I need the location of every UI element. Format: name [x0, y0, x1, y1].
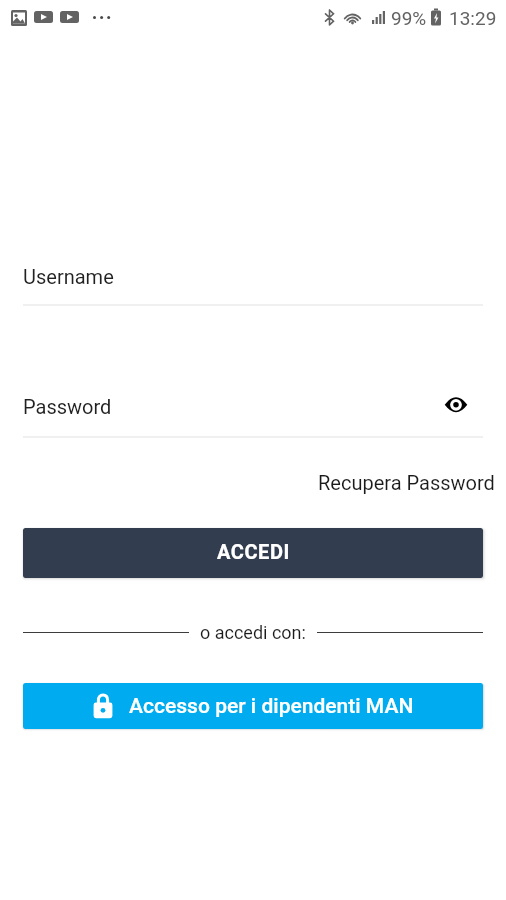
button[interactable]: Accesso per i dipendenti MAN	[23, 683, 483, 729]
staticText: Password	[23, 395, 112, 418]
staticText: Username	[23, 265, 114, 288]
button[interactable]: Username	[23, 262, 483, 290]
staticText: Recupera Password	[318, 471, 495, 494]
button[interactable]: ACCEDI	[23, 528, 483, 578]
staticText: 13:29	[449, 7, 497, 29]
staticText: Accesso per i dipendenti MAN	[129, 694, 414, 719]
staticText: ACCEDI	[217, 540, 290, 563]
staticText: o accedi con:	[200, 622, 306, 643]
button[interactable]: Show password	[440, 392, 472, 420]
button[interactable]: Password	[23, 392, 440, 420]
staticText: 99%	[391, 7, 427, 29]
button[interactable]: Recupera Password	[318, 469, 495, 496]
